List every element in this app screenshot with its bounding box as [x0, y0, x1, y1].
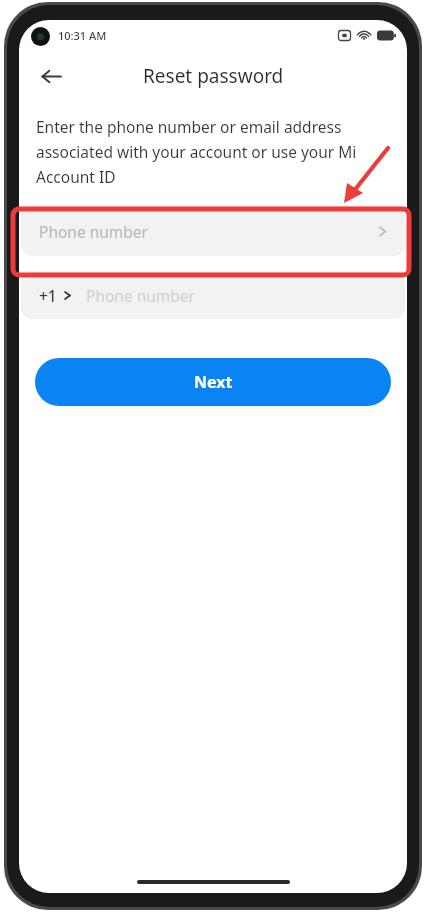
button[interactable]: +1 [21, 272, 405, 319]
button[interactable]: Phone number [21, 206, 405, 256]
button[interactable]: Back [29, 54, 73, 98]
staticText: Phone number [39, 221, 149, 242]
staticText: Enter the phone number or email address … [36, 116, 393, 187]
button[interactable]: Next [35, 358, 391, 406]
staticText: Next [194, 371, 233, 393]
staticText: Phone number [86, 285, 196, 306]
staticText: 10:31 AM [58, 28, 107, 43]
staticText: Reset password [143, 63, 284, 89]
staticText: +1 [39, 285, 57, 306]
